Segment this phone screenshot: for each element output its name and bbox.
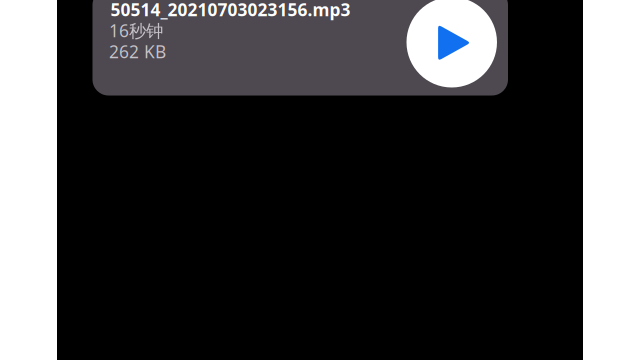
- staticText: 16秒钟: [109, 19, 163, 42]
- button[interactable]: Play: [406, 0, 497, 87]
- staticText: 262 KB: [109, 40, 166, 63]
- staticText: 50514_20210703023156.mp3: [110, 0, 350, 21]
- button[interactable]: 50514_20210703023156.mp3: [92, 0, 508, 95]
